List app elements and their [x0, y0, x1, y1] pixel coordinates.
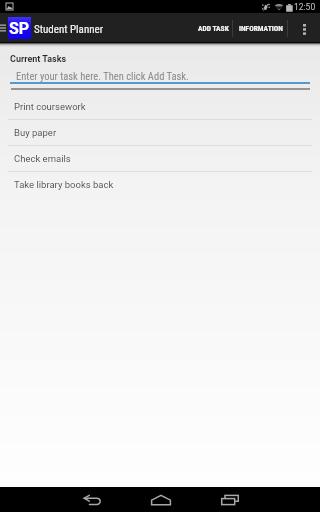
staticText: Current Tasks [10, 54, 67, 65]
staticText: Print coursework [14, 101, 86, 112]
button[interactable]: Home [126, 487, 195, 512]
staticText: Student Planner [34, 23, 104, 36]
staticText: Take library books back [14, 179, 114, 190]
staticText: Check emails [14, 153, 71, 164]
button[interactable]: Enter your task here. Then click Add Tas… [10, 70, 310, 90]
staticText: SP [9, 19, 30, 38]
button[interactable]: Navigate up [0, 13, 104, 43]
button[interactable]: Take library books back [0, 172, 320, 198]
staticText: 12:50 [294, 2, 316, 12]
button[interactable]: Back [57, 487, 126, 512]
button[interactable]: Print coursework [0, 94, 320, 120]
button[interactable]: Buy paper [0, 120, 320, 146]
button[interactable]: More options [288, 13, 320, 43]
button[interactable]: INFORMATION [233, 13, 287, 43]
staticText: Enter your task here. Then click Add Tas… [16, 70, 189, 82]
button[interactable]: Check emails [0, 146, 320, 172]
staticText: INFORMATION [239, 24, 283, 33]
button[interactable]: ADD TASK [187, 13, 232, 43]
button[interactable]: Recent apps [195, 487, 264, 512]
staticText: Buy paper [14, 127, 57, 138]
staticText: ADD TASK [198, 24, 229, 33]
